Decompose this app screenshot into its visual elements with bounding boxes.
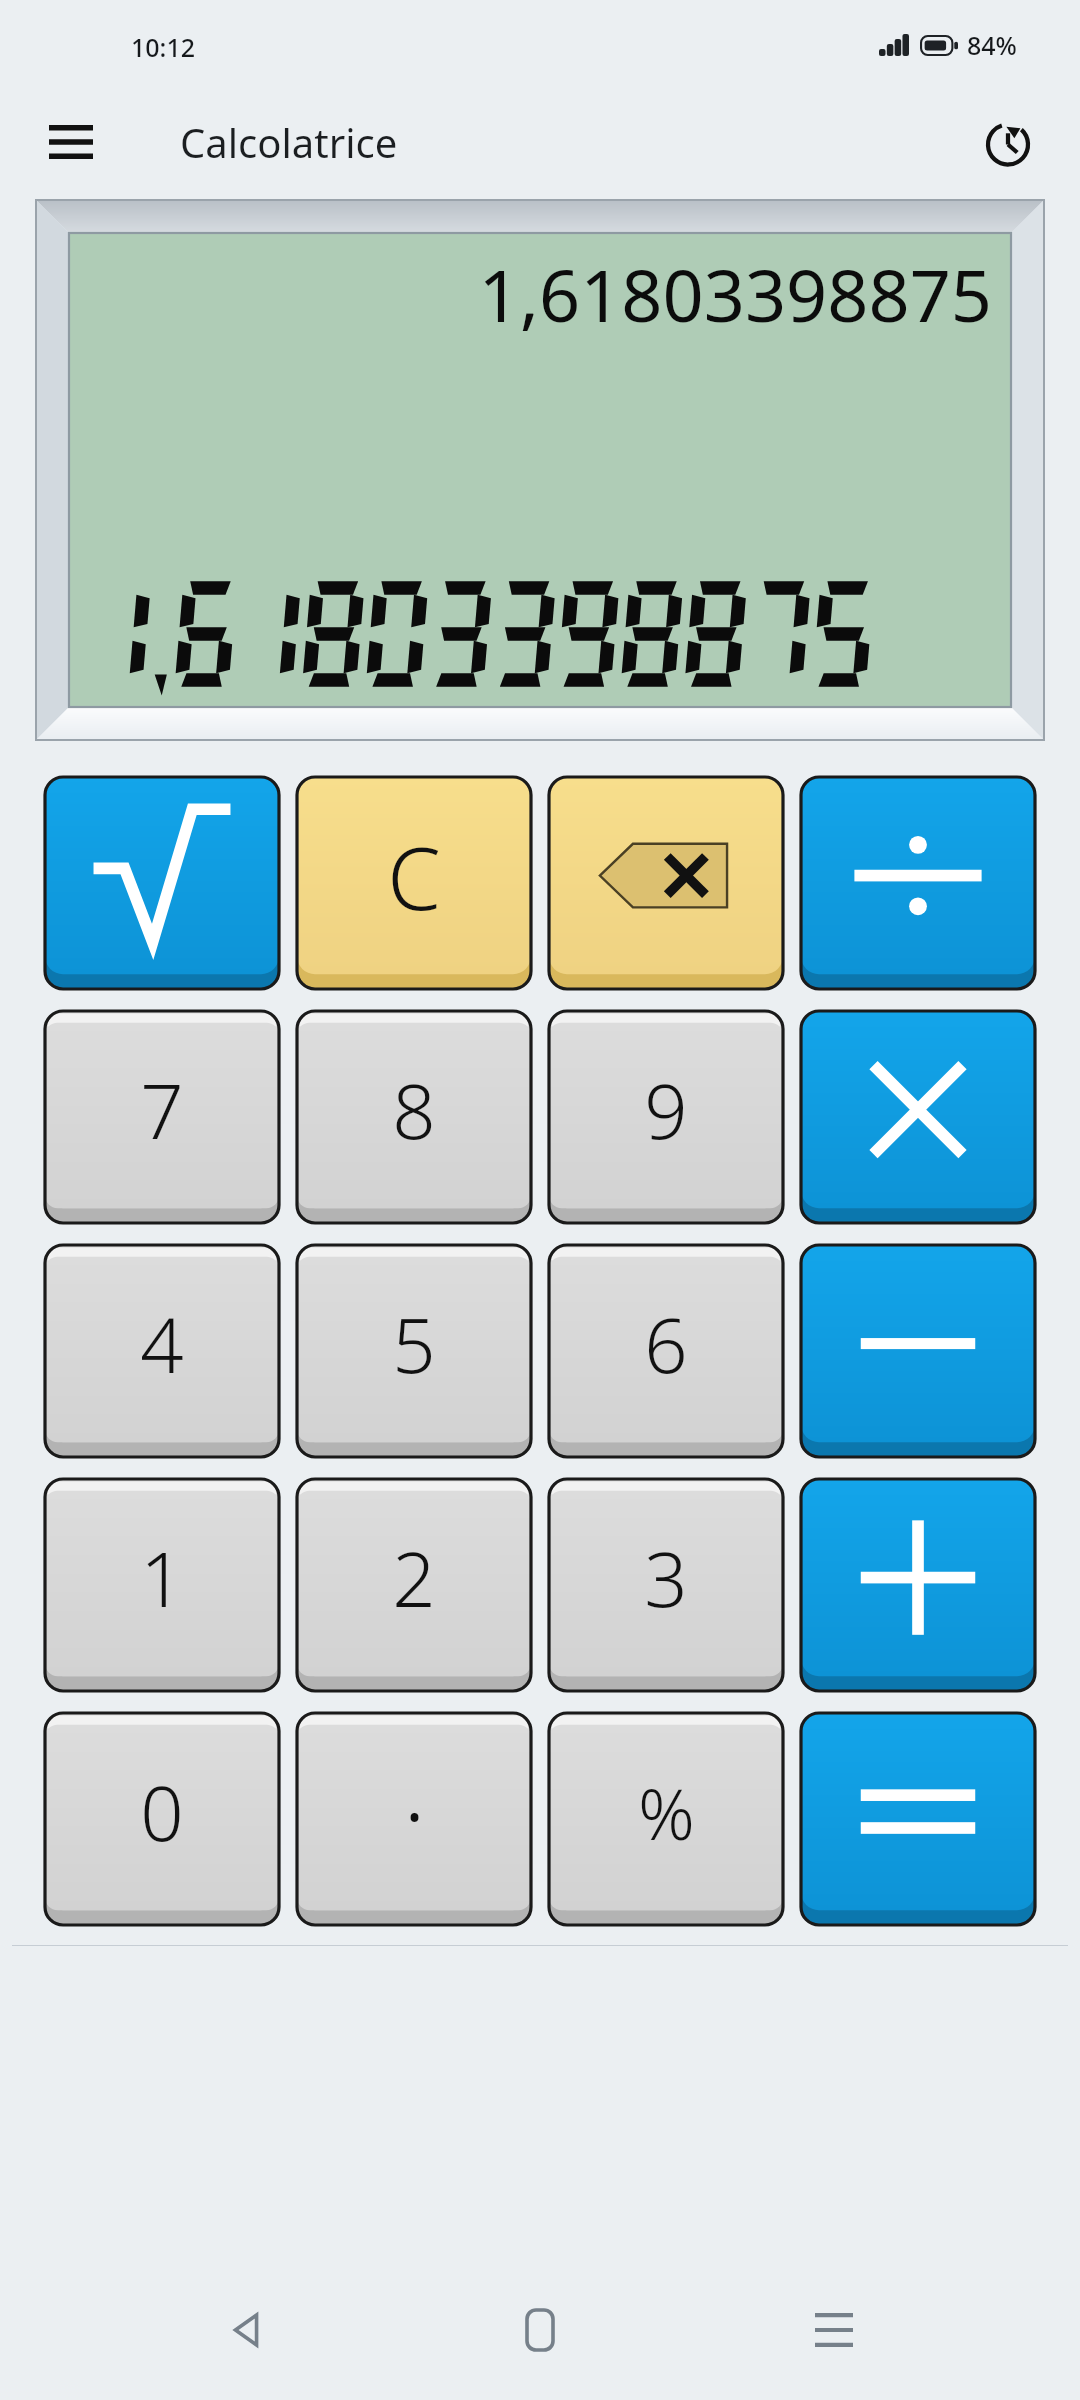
staticText: C: [387, 818, 441, 935]
button[interactable]: Divide: [801, 777, 1035, 989]
button[interactable]: Square root: [45, 777, 279, 989]
button[interactable]: 6: [549, 1245, 783, 1457]
staticText: 2: [392, 1526, 436, 1630]
button[interactable]: 4: [45, 1245, 279, 1457]
button[interactable]: 5: [297, 1245, 531, 1457]
button[interactable]: 9: [549, 1011, 783, 1223]
button[interactable]: History: [974, 109, 1040, 175]
button[interactable]: %: [549, 1713, 783, 1925]
staticText: 84%: [967, 28, 1017, 62]
staticText: 3: [644, 1526, 688, 1630]
staticText: 0: [140, 1760, 184, 1864]
button[interactable]: Multiply: [801, 1011, 1035, 1223]
staticText: Calcolatrice: [180, 115, 398, 169]
button[interactable]: 0: [45, 1713, 279, 1925]
staticText: 4: [140, 1292, 184, 1396]
button[interactable]: 2: [297, 1479, 531, 1691]
staticText: 1,61803398875: [478, 245, 992, 343]
button[interactable]: Home: [492, 2282, 588, 2378]
button[interactable]: Minus: [801, 1245, 1035, 1457]
staticText: 5: [392, 1292, 436, 1396]
staticText: 1: [140, 1526, 184, 1630]
button[interactable]: Back: [198, 2282, 294, 2378]
staticText: 8: [392, 1058, 436, 1162]
button[interactable]: ·: [297, 1713, 531, 1925]
button[interactable]: 1: [45, 1479, 279, 1691]
button[interactable]: Equals: [801, 1713, 1035, 1925]
button[interactable]: 3: [549, 1479, 783, 1691]
button[interactable]: Menu: [40, 111, 102, 173]
staticText: ·: [403, 1750, 426, 1875]
button[interactable]: Plus: [801, 1479, 1035, 1691]
staticText: 6: [644, 1292, 688, 1396]
button[interactable]: 7: [45, 1011, 279, 1223]
staticText: 9: [644, 1058, 688, 1162]
button[interactable]: Backspace: [549, 777, 783, 989]
staticText: 7: [140, 1058, 184, 1162]
staticText: 10:12: [131, 30, 196, 64]
button[interactable]: C: [297, 777, 531, 989]
button[interactable]: Recent apps: [786, 2282, 882, 2378]
button[interactable]: 8: [297, 1011, 531, 1223]
staticText: %: [638, 1765, 695, 1860]
